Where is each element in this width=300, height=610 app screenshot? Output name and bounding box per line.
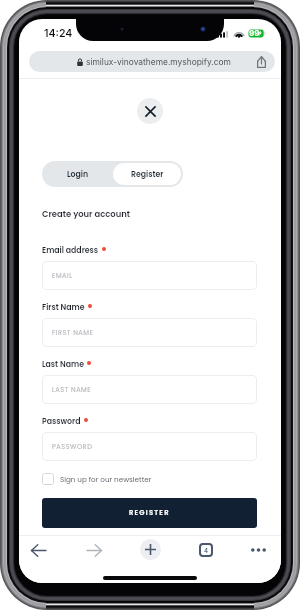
- button[interactable]: Share: [251, 52, 271, 72]
- button[interactable]: Register: [113, 163, 181, 185]
- staticText: similux-vinovatheme.myshopify.com: [86, 57, 231, 67]
- staticText: 99: [249, 28, 260, 38]
- button[interactable]: REGISTER: [42, 498, 257, 528]
- staticText: PASSWORD: [52, 442, 93, 451]
- button[interactable]: EMAIL: [42, 261, 257, 290]
- staticText: Password: [42, 416, 81, 427]
- button[interactable]: More options: [247, 539, 269, 561]
- button[interactable]: Tabs: [197, 541, 215, 559]
- staticText: Register: [131, 169, 164, 180]
- button[interactable]: New tab: [140, 539, 161, 560]
- staticText: Last Name: [42, 359, 84, 370]
- staticText: First Name: [42, 302, 85, 313]
- button[interactable]: LAST NAME: [42, 375, 257, 404]
- staticText: Login: [67, 169, 89, 180]
- staticText: Email address: [42, 245, 99, 256]
- staticText: REGISTER: [129, 508, 170, 518]
- button[interactable]: [29, 51, 275, 72]
- staticText: LAST NAME: [52, 385, 92, 394]
- button[interactable]: Back: [25, 537, 51, 563]
- staticText: 4: [204, 547, 208, 554]
- button[interactable]: Login: [42, 161, 113, 187]
- button[interactable]: Sign up for our newsletter: [42, 469, 152, 489]
- button[interactable]: Forward: [81, 537, 107, 563]
- staticText: EMAIL: [52, 271, 73, 280]
- button[interactable]: PASSWORD: [42, 432, 257, 461]
- staticText: 14:24: [44, 27, 73, 40]
- staticText: Create your account: [42, 208, 130, 220]
- staticText: Sign up for our newsletter: [60, 474, 152, 484]
- button[interactable]: FIRST NAME: [42, 318, 257, 347]
- staticText: FIRST NAME: [52, 328, 94, 337]
- button[interactable]: Close: [137, 98, 163, 124]
